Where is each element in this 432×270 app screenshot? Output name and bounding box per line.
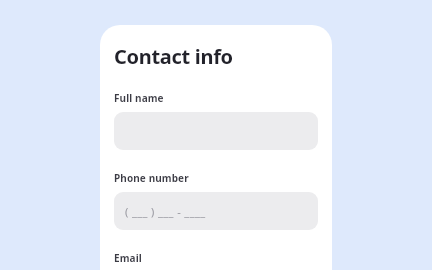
button[interactable]: Phone number input (114, 192, 318, 230)
staticText: ( ___ ) ___ - ____ (125, 204, 206, 219)
staticText: Email (114, 251, 142, 265)
staticText: Full name (114, 91, 164, 105)
staticText: Phone number (114, 171, 189, 185)
staticText: Contact info (114, 43, 233, 70)
